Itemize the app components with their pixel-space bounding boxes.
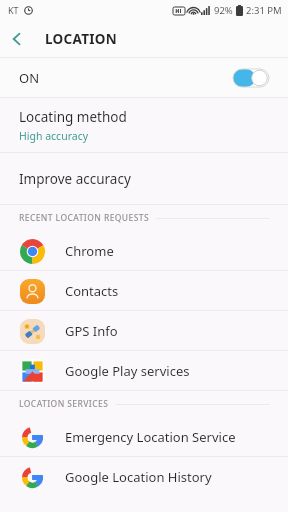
button[interactable]: Contacts bbox=[0, 271, 288, 310]
staticText: High accuracy bbox=[19, 129, 89, 143]
button[interactable]: ON bbox=[0, 58, 288, 97]
staticText: Google Location History bbox=[65, 468, 212, 486]
staticText: Chrome bbox=[65, 242, 114, 260]
staticText: ON bbox=[19, 69, 40, 87]
button[interactable]: Emergency Location Service bbox=[0, 417, 288, 456]
staticText: Google Play services bbox=[65, 362, 190, 380]
button[interactable]: Chrome bbox=[0, 231, 288, 270]
staticText: RECENT LOCATION REQUESTS bbox=[19, 212, 149, 224]
staticText: Improve accuracy bbox=[19, 170, 131, 188]
staticText: LOCATION SERVICES bbox=[19, 398, 109, 410]
button[interactable]: Google Play services bbox=[0, 351, 288, 390]
staticText: GPS Info bbox=[65, 322, 118, 340]
button[interactable]: GPS Info bbox=[0, 311, 288, 350]
staticText: KT bbox=[8, 4, 19, 16]
staticText: Contacts bbox=[65, 282, 119, 300]
button[interactable]: Google Location History bbox=[0, 457, 288, 496]
button[interactable]: Navigate up bbox=[0, 22, 34, 56]
staticText: LOCATION bbox=[45, 30, 118, 48]
staticText: Locating method bbox=[19, 108, 127, 126]
button[interactable]: Improve accuracy bbox=[0, 153, 288, 204]
staticText: 92% bbox=[214, 4, 233, 17]
staticText: Emergency Location Service bbox=[65, 428, 236, 446]
button[interactable]: Locating method bbox=[0, 98, 288, 152]
staticText: 2:31 PM bbox=[246, 4, 282, 17]
